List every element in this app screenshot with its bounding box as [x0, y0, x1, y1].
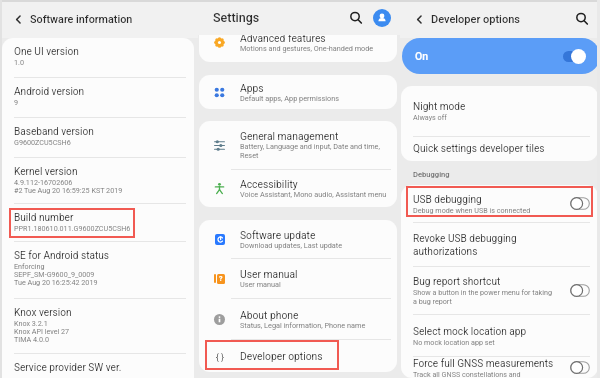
button[interactable]: Knox version [2, 299, 194, 353]
button[interactable]: Bug report shortcut [401, 267, 598, 314]
staticText: Build number [14, 212, 74, 224]
staticText: Quick settings developer tiles [413, 143, 545, 155]
staticText: TIMA 4.0.0 [14, 335, 49, 343]
staticText: Knox 3.2.1 [14, 319, 48, 327]
staticText: Show a button in the power menu for taki… [413, 288, 552, 306]
button[interactable]: One UI version [2, 38, 194, 77]
staticText: Kernel version [14, 166, 78, 178]
staticText: 4.9.112-16702606 [14, 178, 73, 186]
staticText: About phone [240, 309, 299, 321]
staticText: 9 [14, 98, 19, 106]
staticText: PPR1.180610.011.G9600ZCU5CSH6 [14, 224, 131, 232]
button[interactable]: About phone [199, 299, 397, 339]
staticText: ? [219, 275, 223, 283]
button[interactable]: SE for Android status [2, 242, 194, 298]
button[interactable]: Back [10, 11, 26, 27]
staticText: Developer options [240, 350, 323, 362]
button[interactable]: Account [373, 9, 391, 27]
staticText: SEPF_SM-G9600_9_0009 [14, 270, 95, 278]
staticText: Advanced features [240, 35, 326, 44]
staticText: Software update [240, 229, 316, 241]
button[interactable]: Service provider SW ver. [2, 354, 194, 378]
staticText: Download updates, Last update [240, 241, 343, 250]
staticText: Voice Assistant, Mono audio, Assistant m… [240, 190, 387, 199]
staticText: Accessibility [240, 178, 298, 190]
staticText: Battery, Language and input, Date and ti… [240, 142, 380, 160]
button[interactable]: USB debugging [401, 185, 598, 222]
staticText: Knox API level 27 [14, 327, 70, 335]
staticText: General management [240, 130, 339, 142]
staticText: Knox version [14, 307, 72, 319]
staticText: Debugging [413, 170, 450, 179]
staticText: Force full GNSS measurements [413, 358, 554, 370]
button[interactable]: Kernel version [2, 158, 194, 203]
staticText: One UI version [14, 46, 79, 58]
staticText: Always off [413, 113, 447, 121]
button[interactable]: Night mode [401, 86, 598, 136]
staticText: Motions and gestures, One-handed mode [240, 44, 374, 53]
staticText: On [415, 50, 429, 62]
staticText: Service provider SW ver. [14, 362, 122, 374]
staticText: Revoke USB debugging authorizations [413, 233, 517, 257]
button[interactable]: Search [572, 9, 592, 29]
staticText: Debug mode when USB is connected [413, 206, 531, 214]
staticText: Bug report shortcut [413, 276, 501, 288]
button[interactable]: On [402, 38, 600, 74]
button[interactable]: Apps [199, 75, 397, 109]
button[interactable]: Force full GNSS measurements [401, 357, 598, 378]
button[interactable]: Build number [2, 204, 194, 241]
staticText: User manual [240, 268, 298, 280]
button[interactable]: Android version [2, 78, 194, 117]
staticText: #2 Tue Aug 20 16:59:25 KST 2019 [14, 186, 123, 194]
staticText: SE for Android status [14, 250, 110, 262]
staticText: Developer options [431, 13, 520, 26]
staticText: Night mode [413, 101, 466, 113]
staticText: { } [216, 352, 224, 362]
staticText: Apps [240, 82, 264, 94]
button[interactable]: General management [199, 121, 397, 169]
staticText: G9600ZCU5CSH6 [14, 138, 71, 146]
button[interactable]: Select mock location app [401, 315, 598, 356]
staticText: Software information [30, 13, 133, 26]
button[interactable]: Baseband version [2, 118, 194, 157]
staticText: Baseband version [14, 126, 94, 138]
button[interactable]: ? [199, 259, 397, 298]
staticText: Default apps, App permissions [240, 94, 339, 103]
staticText: 1.0 [14, 58, 24, 66]
button[interactable]: Search [346, 8, 366, 28]
button[interactable]: Software update [199, 220, 397, 258]
staticText: Settings [213, 10, 260, 25]
staticText: User manual [240, 280, 281, 289]
staticText: USB debugging [413, 194, 482, 206]
staticText: Enforcing [14, 262, 45, 270]
button[interactable]: Revoke USB debugging authorizations [401, 223, 598, 266]
staticText: Tue Aug 20 16:25:42 2019 [14, 278, 98, 286]
button[interactable]: Back [411, 11, 427, 27]
staticText: Select mock location app [413, 326, 527, 338]
staticText: Track all GNSS constellations and [413, 370, 521, 378]
button[interactable]: Quick settings developer tiles [401, 137, 598, 161]
button[interactable]: Advanced features [199, 35, 397, 56]
button[interactable]: { } [199, 340, 397, 372]
staticText: Android version [14, 86, 85, 98]
button[interactable]: Accessibility [199, 170, 397, 207]
staticText: No mock location app set [413, 338, 495, 346]
staticText: Status, Legal information, Phone name [240, 321, 366, 330]
